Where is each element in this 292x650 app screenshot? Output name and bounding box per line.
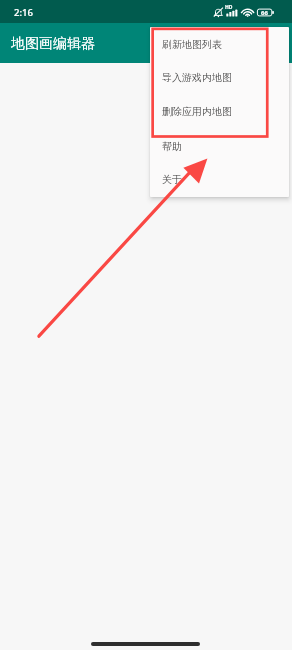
button[interactable]: 关于 (150, 163, 289, 196)
staticText: 帮助 (162, 140, 182, 153)
button[interactable]: 删除应用内地图 (150, 95, 289, 128)
button[interactable]: 帮助 (150, 130, 289, 163)
staticText: 2:16 (14, 6, 34, 19)
button[interactable]: 导入游戏内地图 (150, 61, 289, 94)
staticText: 66 (261, 9, 268, 17)
staticText: 刷新地图列表 (162, 38, 222, 51)
staticText: 地图画编辑器 (11, 35, 95, 53)
button[interactable]: 刷新地图列表 (150, 28, 289, 61)
staticText: 导入游戏内地图 (162, 71, 232, 84)
staticText: HD (225, 4, 233, 11)
button[interactable]: More options (254, 25, 290, 61)
staticText: 删除应用内地图 (162, 105, 232, 118)
staticText: 关于 (162, 173, 182, 186)
